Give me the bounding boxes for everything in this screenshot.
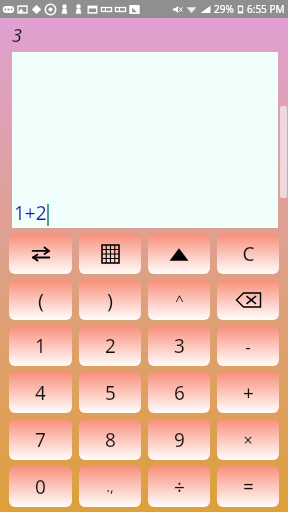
staticText: ( bbox=[38, 287, 44, 314]
staticText: 6:55 PM bbox=[247, 2, 285, 16]
staticText: = bbox=[243, 474, 254, 500]
button[interactable]: × bbox=[217, 419, 279, 460]
button[interactable]: 9 bbox=[148, 419, 210, 460]
button[interactable]: Up bbox=[148, 234, 210, 274]
staticText: 1+2 bbox=[14, 200, 47, 226]
staticText: 2 bbox=[105, 333, 116, 359]
staticText: 5 bbox=[105, 380, 116, 406]
button[interactable]: 6 bbox=[148, 372, 210, 413]
staticText: 0 bbox=[35, 474, 46, 500]
button[interactable]: Backspace bbox=[217, 280, 279, 320]
button[interactable]: 4 bbox=[9, 372, 72, 413]
staticText: ) bbox=[107, 287, 113, 314]
button[interactable]: 1 bbox=[9, 326, 72, 366]
staticText: C bbox=[242, 241, 255, 267]
button[interactable]: Swap bbox=[9, 234, 72, 274]
button[interactable]: 3 bbox=[148, 326, 210, 366]
button[interactable]: 8 bbox=[79, 419, 141, 460]
staticText: - bbox=[245, 335, 251, 358]
button[interactable]: 7 bbox=[9, 419, 72, 460]
staticText: × bbox=[243, 429, 253, 451]
staticText: 8 bbox=[105, 427, 116, 453]
button[interactable]: = bbox=[217, 466, 279, 507]
staticText: 6 bbox=[174, 380, 185, 406]
button[interactable]: + bbox=[217, 372, 279, 413]
staticText: ^ bbox=[175, 290, 184, 310]
button[interactable]: C bbox=[217, 234, 279, 274]
button[interactable]: ÷ bbox=[148, 466, 210, 507]
button[interactable]: ( bbox=[9, 280, 72, 320]
staticText: + bbox=[243, 380, 254, 406]
staticText: 7 bbox=[35, 427, 46, 453]
button[interactable]: - bbox=[217, 326, 279, 366]
staticText: 3 bbox=[12, 23, 22, 48]
button[interactable]: ^ bbox=[148, 280, 210, 320]
button[interactable]: 2 bbox=[79, 326, 141, 366]
button[interactable]: 5 bbox=[79, 372, 141, 413]
staticText: 3 bbox=[174, 333, 185, 359]
button[interactable]: 0 bbox=[9, 466, 72, 507]
staticText: ., bbox=[106, 477, 114, 496]
button[interactable]: ., bbox=[79, 466, 141, 507]
staticText: 1 bbox=[35, 333, 46, 359]
staticText: 29% bbox=[214, 2, 234, 16]
staticText: 4 bbox=[35, 380, 46, 406]
staticText: ÷ bbox=[174, 474, 185, 500]
staticText: 9 bbox=[174, 427, 185, 453]
button[interactable]: Table bbox=[79, 234, 141, 274]
button[interactable]: ) bbox=[79, 280, 141, 320]
